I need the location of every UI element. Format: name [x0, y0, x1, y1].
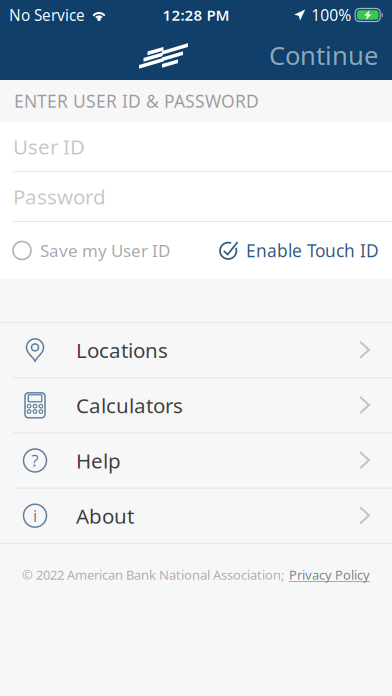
staticText: About: [76, 502, 134, 530]
button[interactable]: Locations: [0, 323, 392, 377]
staticText: Password: [13, 182, 106, 210]
staticText: 12:28 PM: [162, 5, 229, 25]
staticText: ?: [31, 450, 38, 471]
staticText: ENTER USER ID & PASSWORD: [14, 89, 259, 113]
staticText: Help: [76, 446, 121, 474]
button[interactable]: Continue: [269, 30, 392, 80]
staticText: Privacy Policy: [289, 566, 370, 584]
button[interactable]: Save my User ID: [13, 239, 170, 262]
staticText: No Service: [9, 5, 85, 25]
staticText: i: [33, 505, 37, 527]
button[interactable]: i: [0, 489, 392, 543]
button[interactable]: Privacy Policy: [289, 566, 370, 584]
staticText: User ID: [13, 132, 85, 160]
button[interactable]: Enable Touch ID: [219, 239, 379, 262]
button[interactable]: ?: [0, 433, 392, 488]
staticText: © 2022 American Bank National Associatio…: [22, 566, 284, 584]
staticText: Calculators: [76, 391, 183, 419]
staticText: Enable Touch ID: [246, 239, 379, 262]
staticText: Save my User ID: [40, 239, 170, 262]
button[interactable]: Calculators: [0, 378, 392, 432]
staticText: Continue: [269, 38, 378, 72]
staticText: 100%: [311, 4, 351, 26]
staticText: Locations: [76, 336, 168, 364]
